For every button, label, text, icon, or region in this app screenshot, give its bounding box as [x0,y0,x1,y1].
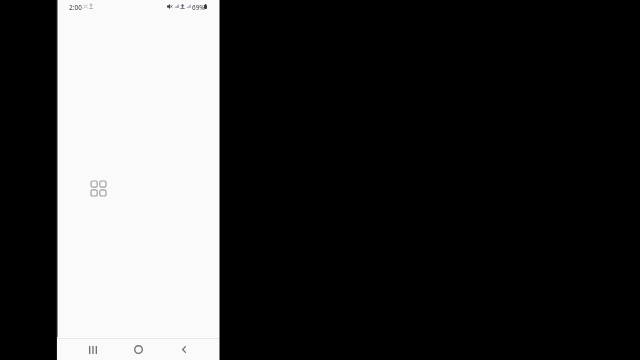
button[interactable]: Recent apps [78,339,108,360]
button[interactable]: Home [123,339,153,360]
staticText: 2:00 [69,3,82,12]
button[interactable]: Apps grid [91,181,106,196]
button[interactable]: Back [169,339,199,360]
staticText: 69% [192,3,205,12]
